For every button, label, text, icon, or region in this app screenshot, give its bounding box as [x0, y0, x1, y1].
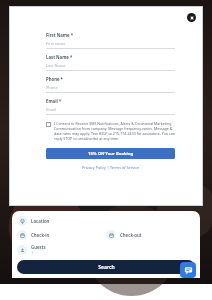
staticText: Email: [46, 107, 56, 112]
button[interactable]: Location: [17, 216, 195, 226]
button[interactable]: Last Name: [46, 63, 175, 71]
button[interactable]: Phone: [46, 85, 175, 93]
staticText: I Consent to Receive SMS Notifications, …: [54, 121, 175, 141]
button[interactable]: Open chat: [180, 262, 196, 278]
staticText: Last Name *: [46, 54, 73, 60]
staticText: Location: [31, 218, 50, 224]
staticText: Last Name: [46, 63, 66, 68]
button[interactable]: First name: [46, 41, 175, 49]
button[interactable]: Search: [17, 260, 195, 274]
staticText: Check-out: [120, 232, 142, 238]
staticText: Phone *: [46, 76, 63, 82]
button[interactable]: 15% Off Your Booking: [46, 148, 175, 159]
staticText: Search: [98, 264, 115, 271]
button[interactable]: Close: [187, 13, 196, 22]
button[interactable]: Guests: [17, 244, 195, 255]
button[interactable]: I Consent to Receive SMS Notifications, …: [46, 121, 175, 141]
staticText: Phone: [46, 85, 58, 90]
staticText: Privacy Policy | Terms of Service: [82, 165, 140, 170]
button[interactable]: Check-in: [17, 230, 106, 240]
staticText: First Name *: [46, 32, 73, 38]
staticText: 1: [31, 250, 34, 255]
staticText: Email *: [46, 98, 62, 104]
button[interactable]: Check-out: [106, 230, 195, 240]
staticText: First name: [46, 41, 66, 46]
button[interactable]: Email: [46, 107, 175, 115]
staticText: 15% Off Your Booking: [88, 151, 134, 157]
staticText: Guests: [31, 244, 46, 250]
staticText: Check-in: [31, 232, 50, 238]
button[interactable]: Privacy Policy | Terms of Service: [82, 165, 140, 170]
